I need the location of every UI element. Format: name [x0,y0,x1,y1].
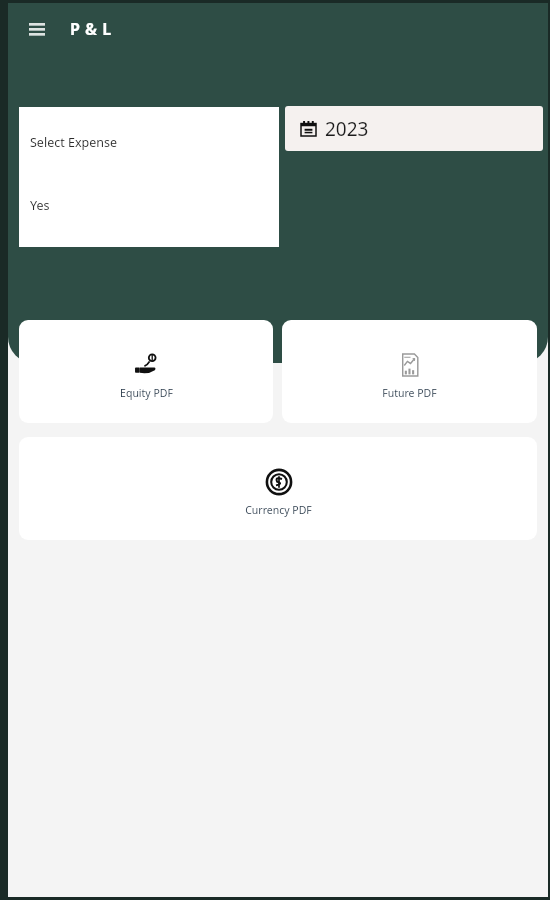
button[interactable]: Currency PDF [19,437,537,540]
button[interactable]: Future PDF [282,320,537,423]
button[interactable]: Equity PDF [19,320,273,423]
staticText: Select Expense [30,134,118,151]
button[interactable]: 2023 [285,106,543,151]
button[interactable]: Open navigation menu [22,14,52,44]
staticText: P & L [70,18,112,40]
staticText: Equity PDF [120,386,173,400]
staticText: Future PDF [382,386,437,400]
button[interactable]: Select Expense [19,107,279,247]
staticText: Yes [30,197,50,214]
staticText: 2023 [325,116,369,142]
staticText: Currency PDF [245,503,312,517]
